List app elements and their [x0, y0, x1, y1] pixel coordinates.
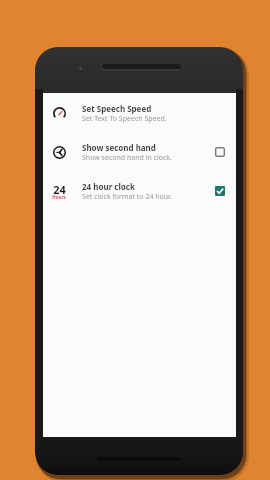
button[interactable]: 24 [43, 171, 236, 210]
staticText: Set Text To Speech Speed. [82, 114, 167, 124]
staticText: Show second hand [82, 142, 156, 153]
staticText: 24 hour clock [82, 181, 135, 192]
staticText: Set Speech Speed [82, 103, 152, 114]
button[interactable]: Set Speech Speed [43, 93, 236, 132]
staticText: 24 [53, 182, 66, 197]
staticText: Set clock format to 24 hour. [82, 192, 172, 202]
staticText: Show second hand in clock. [82, 153, 172, 163]
staticText: Hours [52, 194, 66, 200]
button[interactable]: Checked [212, 183, 228, 199]
button[interactable]: Unchecked [212, 144, 228, 160]
button[interactable]: Show second hand [43, 132, 236, 171]
